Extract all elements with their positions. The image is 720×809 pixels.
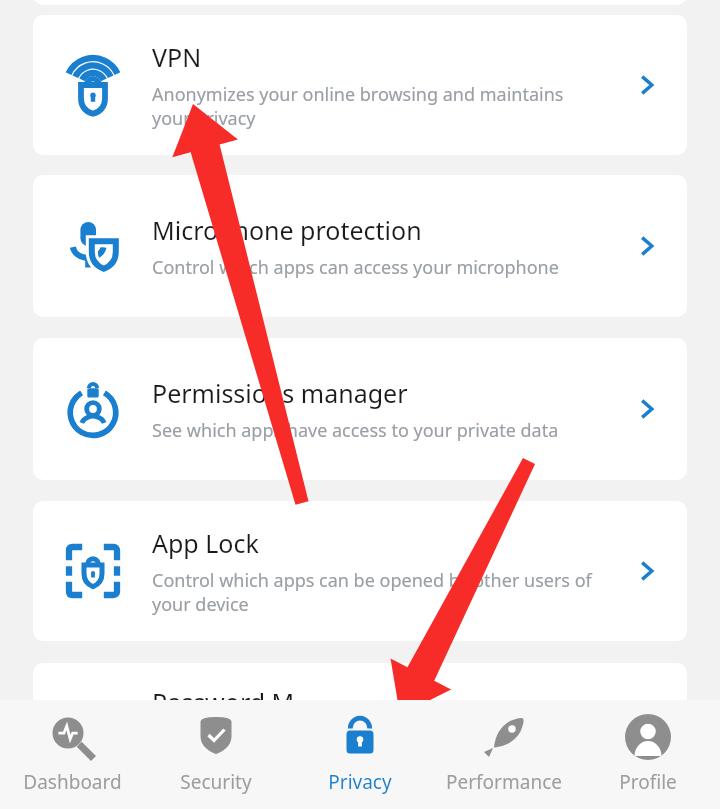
- staticText: Profile: [619, 769, 677, 795]
- staticText: Performance: [446, 769, 562, 795]
- staticText: Control which apps can be opened by othe…: [152, 568, 595, 616]
- other: Performance: [479, 712, 529, 762]
- button[interactable]: Performance: [432, 700, 576, 809]
- other: Dashboard: [47, 712, 97, 762]
- other: Security: [191, 712, 241, 762]
- button[interactable]: VPN: [33, 15, 687, 155]
- staticText: Privacy: [328, 769, 392, 795]
- button[interactable]: App Lock: [33, 501, 687, 641]
- staticText: Anonymizes your online browsing and main…: [152, 82, 595, 130]
- staticText: Security: [180, 769, 252, 795]
- staticText: Dashboard: [23, 769, 122, 795]
- staticText: App Lock: [152, 526, 259, 560]
- button[interactable]: Microphone protection: [33, 175, 687, 317]
- button[interactable]: Security: [144, 700, 288, 809]
- other: Privacy: [335, 712, 385, 762]
- other: Profile: [623, 712, 673, 762]
- button[interactable]: Permissions manager: [33, 338, 687, 480]
- staticText: Password M…: [152, 685, 315, 719]
- staticText: See which apps have access to your priva…: [152, 418, 559, 443]
- staticText: Control which apps can access your micro…: [152, 255, 559, 280]
- staticText: Microphone protection: [152, 213, 422, 247]
- staticText: VPN: [152, 40, 202, 74]
- staticText: Permissions manager: [152, 376, 408, 410]
- button[interactable]: Password M…: [33, 663, 687, 763]
- button[interactable]: Dashboard: [0, 700, 144, 809]
- button[interactable]: Profile: [576, 700, 720, 809]
- button[interactable]: Privacy: [288, 700, 432, 809]
